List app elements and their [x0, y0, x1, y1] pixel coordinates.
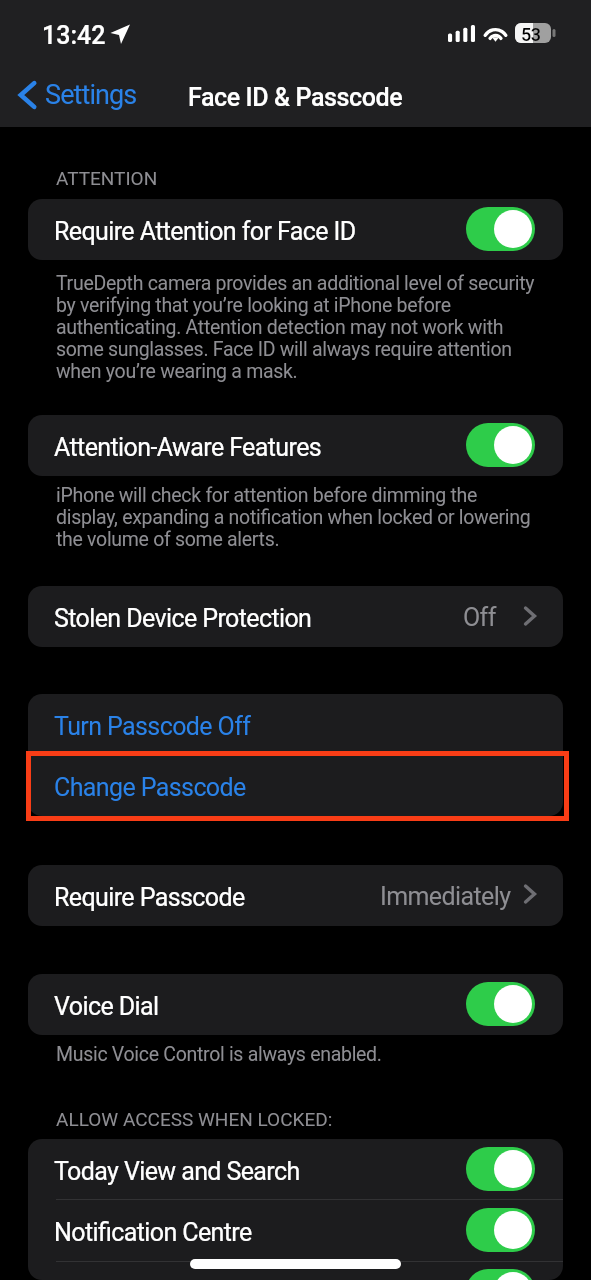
staticText: Today View and Search — [54, 1157, 300, 1186]
button[interactable]: Settings — [9, 74, 145, 116]
button[interactable]: Toggle switch — [466, 982, 535, 1026]
staticText: Attention-Aware Features — [54, 433, 322, 462]
staticText: Immediately — [380, 882, 511, 911]
staticText: Face ID & Passcode — [188, 83, 403, 112]
staticText: 13:42 — [42, 21, 106, 50]
button[interactable]: Toggle switch — [466, 207, 535, 251]
button[interactable]: Attention-Aware Features — [28, 415, 563, 476]
button[interactable]: Stolen Device Protection — [28, 586, 563, 647]
button[interactable]: Turn Passcode Off — [28, 694, 563, 755]
staticText: Music Voice Control is always enabled. — [56, 1043, 564, 1066]
staticText: Voice Dial — [54, 992, 159, 1021]
button[interactable]: Toggle switch — [466, 1147, 535, 1191]
staticText: 53 — [521, 24, 541, 45]
button[interactable]: Require Attention for Face ID — [28, 199, 563, 260]
staticText: iPhone will check for attention before d… — [56, 484, 564, 551]
button[interactable]: Toggle switch — [466, 1269, 535, 1280]
button[interactable]: Require Passcode — [28, 865, 563, 926]
staticText: Require Attention for Face ID — [54, 217, 356, 246]
staticText: Change Passcode — [54, 773, 246, 802]
staticText: Off — [463, 603, 496, 632]
staticText: TrueDepth camera provides an additional … — [56, 272, 564, 383]
staticText: Turn Passcode Off — [54, 712, 251, 741]
button[interactable]: Change Passcode — [28, 755, 563, 816]
button[interactable]: Notification Centre — [28, 1200, 563, 1261]
button[interactable]: Today View and Search — [28, 1139, 563, 1200]
button[interactable]: Toggle switch — [466, 1208, 535, 1252]
staticText: Stolen Device Protection — [54, 604, 312, 633]
staticText: ATTENTION — [56, 167, 158, 189]
button[interactable]: Toggle switch — [466, 423, 535, 467]
button[interactable]: Voice Dial — [28, 974, 563, 1035]
staticText: Settings — [45, 79, 137, 111]
staticText: Notification Centre — [54, 1218, 252, 1247]
staticText: Require Passcode — [54, 883, 245, 912]
staticText: ALLOW ACCESS WHEN LOCKED: — [56, 1108, 333, 1130]
